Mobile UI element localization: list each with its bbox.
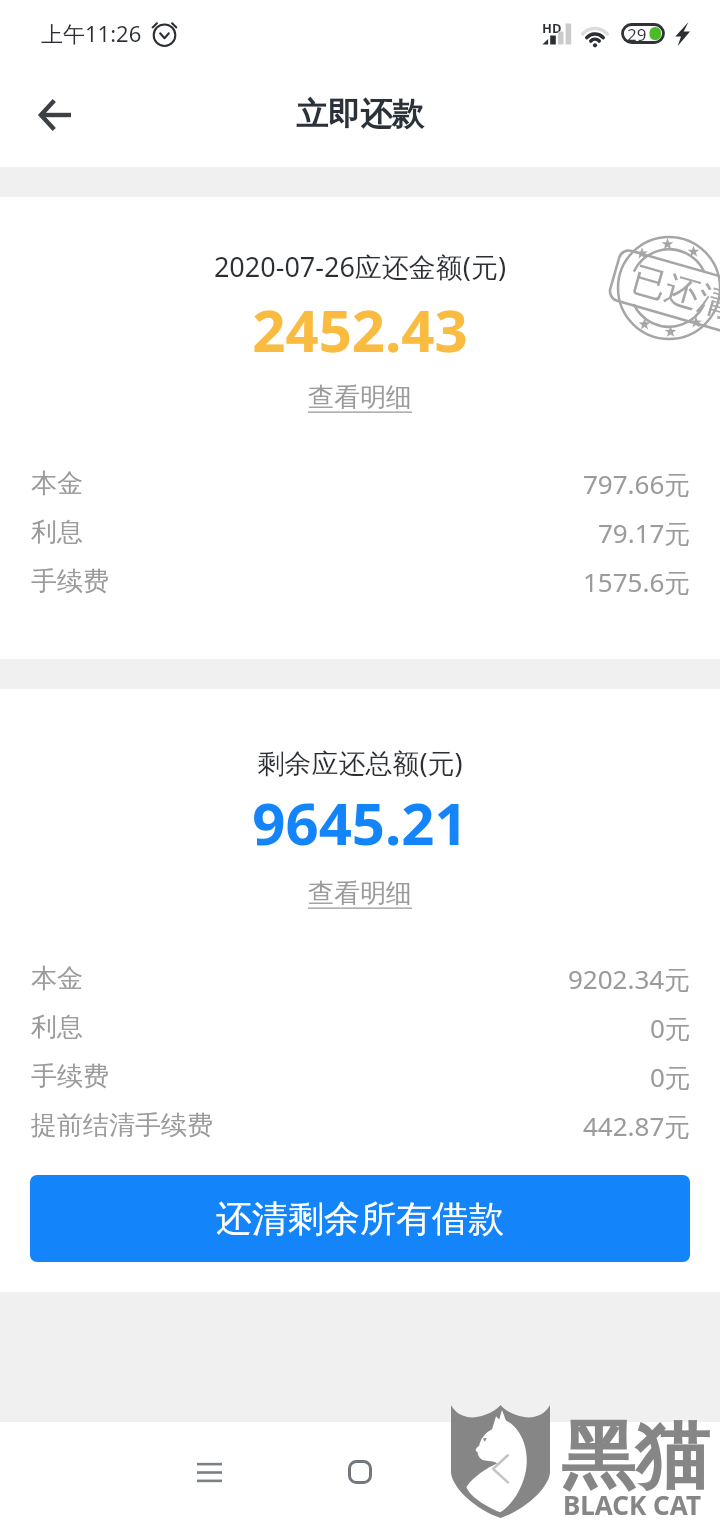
button[interactable]: Back [476, 1437, 546, 1507]
staticText: 442.87元 [583, 1108, 691, 1142]
staticText: 79.17元 [598, 515, 691, 549]
staticText: 9645.21 [0, 783, 720, 862]
staticText: 还清剩余所有借款 [216, 1196, 504, 1241]
staticText: 2020-07-26应还金额(元) [0, 248, 720, 285]
staticText: 0元 [650, 1059, 691, 1093]
button[interactable]: Back [17, 77, 93, 153]
staticText: 利息 [31, 1011, 83, 1044]
staticText: 797.66元 [583, 466, 691, 500]
staticText: 立即还款 [296, 94, 424, 134]
staticText: BLACK CAT [563, 1487, 701, 1520]
staticText: 手续费 [31, 565, 109, 598]
staticText: 剩余应还总额(元) [0, 744, 720, 781]
button[interactable]: Recent apps [174, 1437, 244, 1507]
button[interactable]: 查看明细 [300, 377, 420, 418]
staticText: 1575.6元 [583, 564, 691, 598]
staticText: 上午11:26 [41, 18, 142, 48]
staticText: 0元 [650, 1010, 691, 1044]
staticText: 9202.34元 [568, 961, 691, 995]
button[interactable]: 还清剩余所有借款 [30, 1175, 690, 1262]
staticText: 提前结清手续费 [31, 1109, 213, 1142]
staticText: 手续费 [31, 1060, 109, 1093]
staticText: 黑猫 [561, 1410, 709, 1503]
staticText: 本金 [31, 962, 83, 995]
staticText: 已还清 [627, 257, 720, 327]
button[interactable]: Home [325, 1437, 395, 1507]
staticText: HD [542, 19, 562, 37]
staticText: 利息 [31, 516, 83, 549]
staticText: 2452.43 [0, 290, 720, 369]
button[interactable]: 查看明细 [300, 873, 420, 914]
staticText: 29 [627, 23, 647, 44]
staticText: 本金 [31, 467, 83, 500]
